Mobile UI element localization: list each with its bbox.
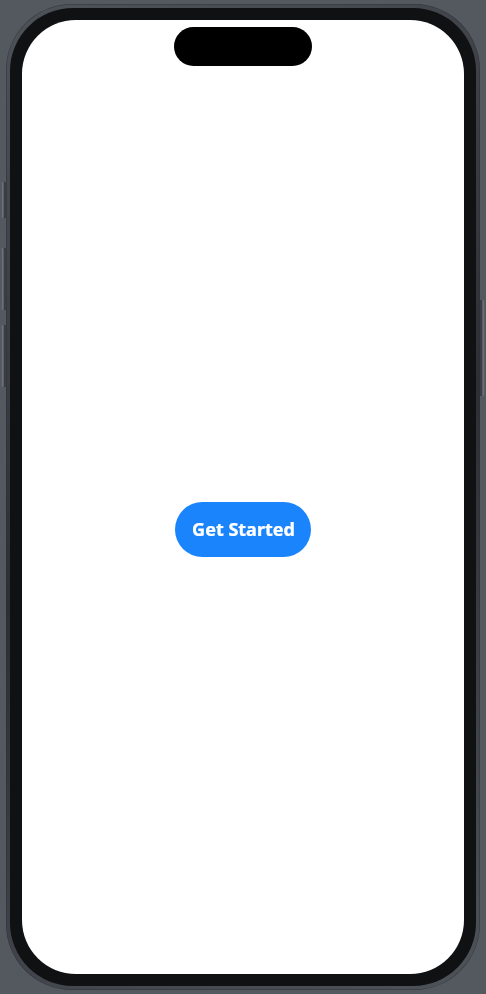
other: Dynamic Island <box>174 27 312 66</box>
staticText: Get Started <box>192 517 295 542</box>
button[interactable]: Get Started <box>175 502 311 557</box>
